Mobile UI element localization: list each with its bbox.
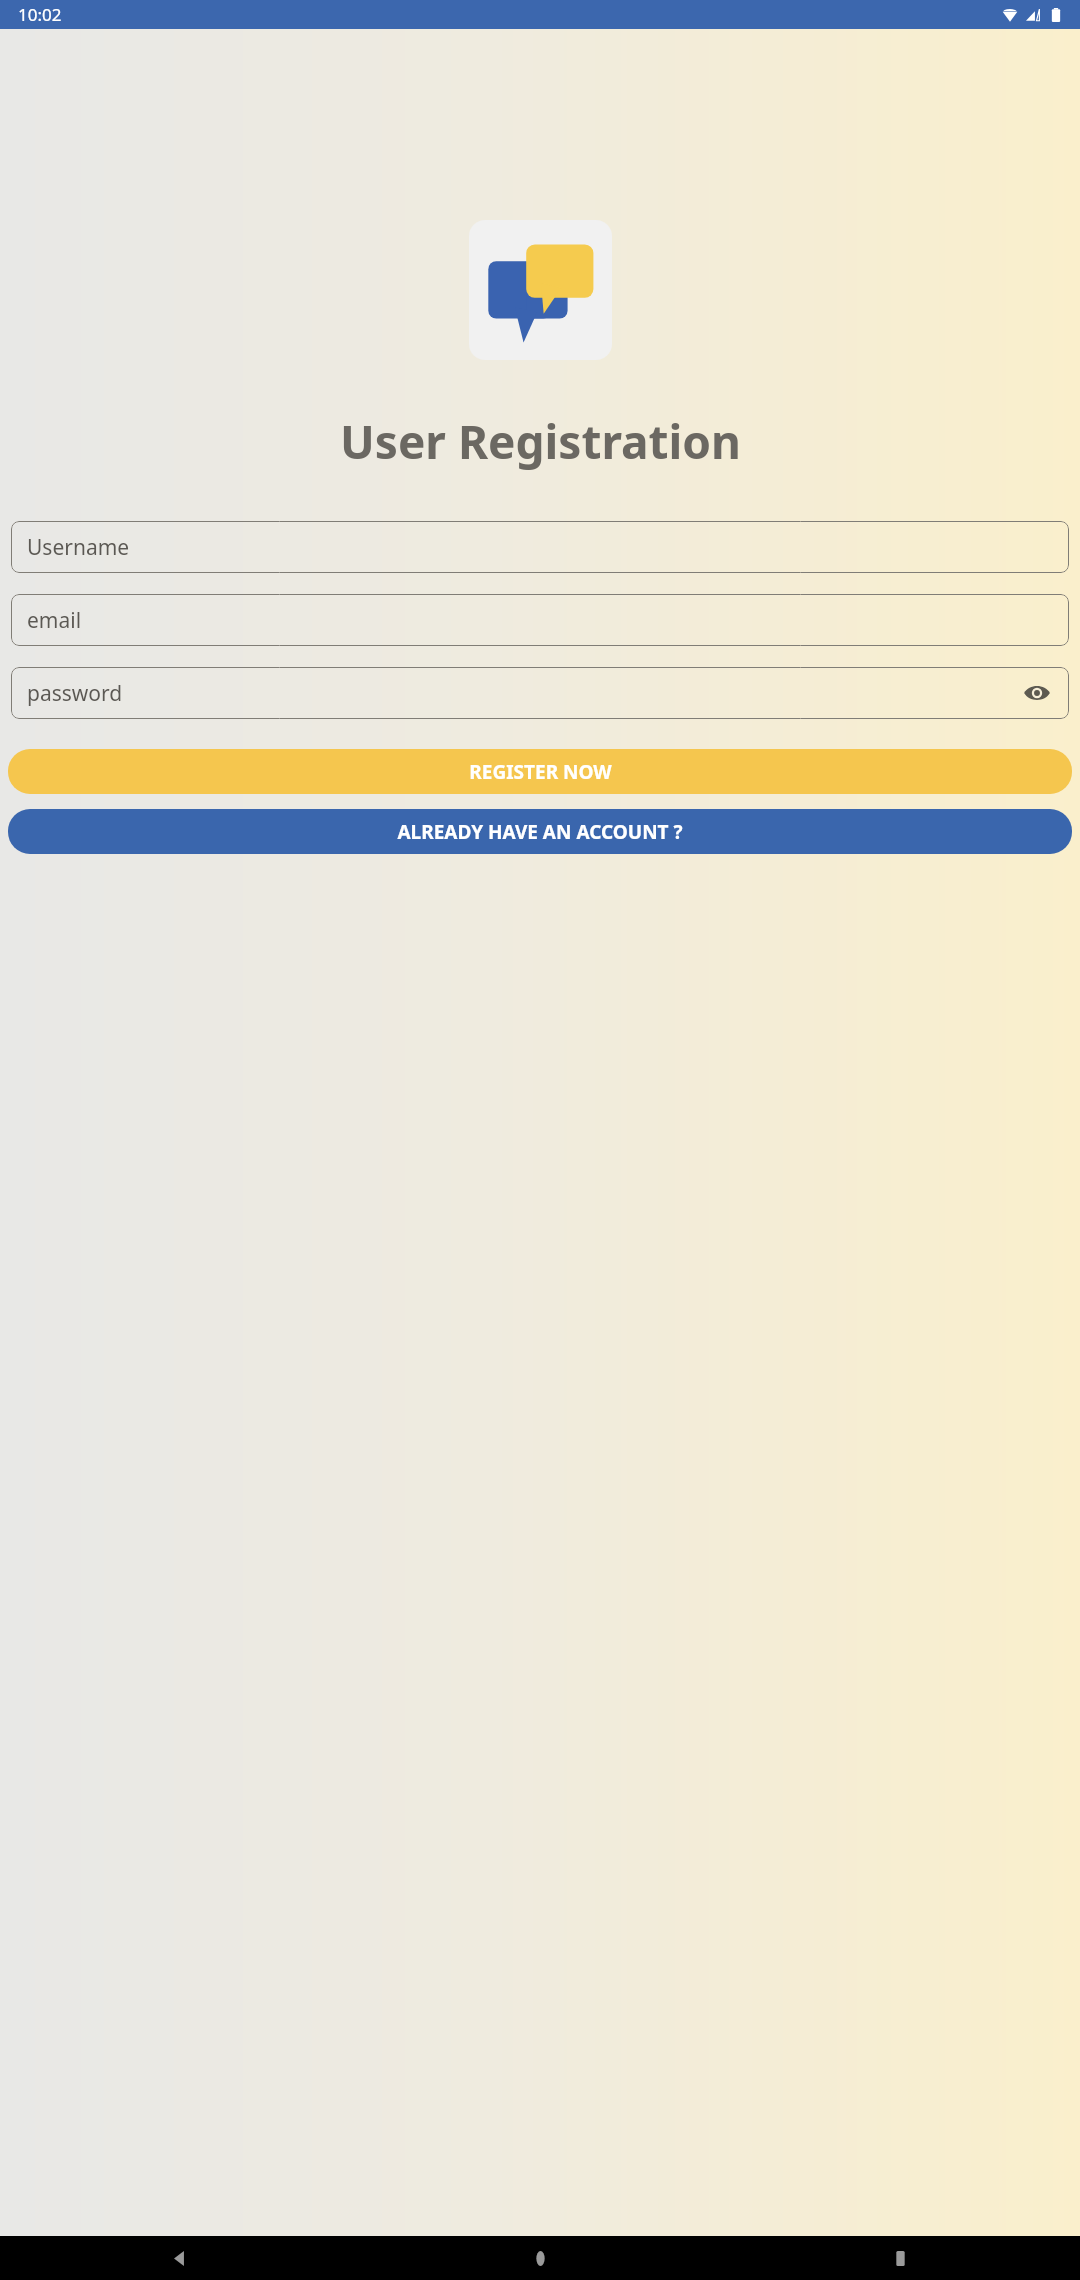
staticText: 10:02: [18, 3, 62, 26]
button[interactable]: ALREADY HAVE AN ACCOUNT ?: [8, 809, 1072, 854]
button[interactable]: Recent apps: [720, 2236, 1080, 2280]
button[interactable]: Back: [0, 2236, 360, 2280]
staticText: password: [27, 679, 123, 708]
button[interactable]: Username: [11, 521, 1069, 573]
staticText: REGISTER NOW: [469, 759, 612, 785]
button[interactable]: REGISTER NOW: [8, 749, 1072, 794]
staticText: email: [27, 606, 82, 635]
button[interactable]: email: [11, 594, 1069, 646]
button[interactable]: Show password: [1020, 676, 1054, 710]
staticText: User Registration: [340, 410, 741, 473]
staticText: Username: [27, 533, 130, 562]
button[interactable]: Home: [360, 2236, 720, 2280]
staticText: ALREADY HAVE AN ACCOUNT ?: [397, 819, 683, 845]
button[interactable]: password: [11, 667, 1069, 719]
